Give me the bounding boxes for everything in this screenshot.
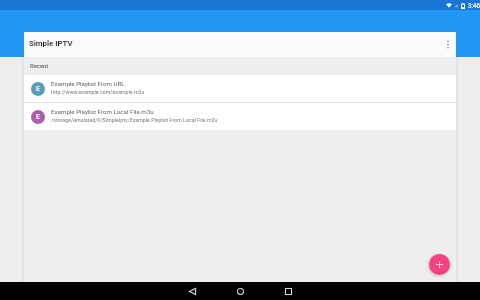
- staticText: 3:46: [468, 2, 480, 9]
- staticText: http://www.example.com/example.m3u: [51, 89, 145, 95]
- staticText: E: [36, 85, 40, 93]
- staticText: E: [36, 113, 40, 121]
- button[interactable]: E: [24, 75, 456, 102]
- staticText: Example Playlist From URL: [51, 80, 125, 87]
- staticText: Recent: [30, 63, 49, 70]
- button[interactable]: Home: [216, 282, 264, 300]
- button[interactable]: E: [24, 103, 456, 130]
- staticText: Simple IPTV: [29, 39, 73, 48]
- staticText: Example Playlist From Local File.m3u: [51, 108, 154, 115]
- button[interactable]: Simple IPTV: [24, 32, 456, 57]
- button[interactable]: Add playlist: [429, 254, 450, 275]
- button[interactable]: More options: [440, 32, 456, 57]
- button[interactable]: Recents: [264, 282, 312, 300]
- staticText: /storage/emulated/0/SimpleIptv/Example P…: [51, 117, 218, 123]
- button[interactable]: Back: [168, 282, 216, 300]
